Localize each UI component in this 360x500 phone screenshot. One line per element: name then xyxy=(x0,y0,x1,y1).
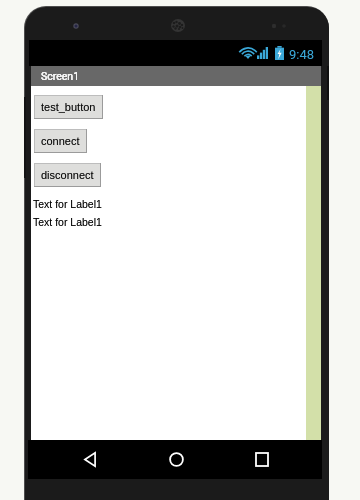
staticText: connect xyxy=(41,135,80,147)
staticText: Screen1 xyxy=(41,70,80,82)
button[interactable]: connect xyxy=(34,129,87,153)
button[interactable]: Home xyxy=(162,440,190,479)
staticText: connect xyxy=(41,135,80,147)
button[interactable]: Recent apps xyxy=(248,440,276,479)
staticText: 9:48 xyxy=(289,47,315,62)
staticText: test_button xyxy=(41,101,96,113)
staticText: disconnect xyxy=(41,169,94,181)
button[interactable]: disconnect xyxy=(34,163,101,187)
staticText: disconnect xyxy=(41,169,94,181)
button[interactable]: Back xyxy=(76,440,104,479)
button[interactable]: test_button xyxy=(34,95,103,119)
staticText: Text for Label1 xyxy=(33,198,102,210)
button[interactable]: Screen1 xyxy=(31,66,321,86)
staticText: Text for Label1 xyxy=(33,216,102,228)
staticText: Screen1 xyxy=(41,70,80,82)
staticText: Text for Label1 xyxy=(33,216,102,228)
staticText: test_button xyxy=(41,101,96,113)
staticText: Text for Label1 xyxy=(33,198,102,210)
